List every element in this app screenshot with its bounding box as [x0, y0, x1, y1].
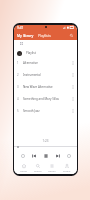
staticText: Playlist — [26, 51, 36, 55]
staticText: Search — [34, 169, 42, 172]
staticText: Library — [48, 169, 56, 172]
staticText: 3 — [17, 85, 19, 89]
staticText: New Wave Alternative — [23, 85, 53, 89]
staticText: Instrumental — [23, 73, 41, 77]
staticText: 2 — [17, 73, 19, 77]
button[interactable]: Playlist — [14, 49, 77, 57]
staticText: Profile — [63, 169, 71, 172]
button[interactable]: Shuffle — [18, 151, 27, 160]
button[interactable]: Search — [69, 33, 74, 38]
button[interactable]: Search — [33, 163, 43, 173]
button[interactable]: 1 — [14, 57, 77, 69]
staticText: Smooth Jazz — [23, 109, 40, 113]
button[interactable]: Profile — [62, 163, 72, 173]
staticText: 5 — [17, 109, 19, 113]
button[interactable]: Playlists — [38, 33, 51, 38]
staticText: 4 — [17, 97, 19, 101]
staticText: 9:41 — [17, 26, 24, 30]
staticText: Something and Mary Sillas — [23, 97, 59, 101]
button[interactable]: Repeat — [64, 151, 73, 160]
staticText: 1:23 — [14, 139, 77, 143]
button[interactable]: 3 — [14, 81, 77, 93]
button[interactable]: Previous — [29, 151, 38, 160]
staticText: Home — [20, 169, 27, 172]
button[interactable]: 2 — [14, 69, 77, 81]
staticText: 1 — [17, 61, 19, 65]
button[interactable]: My library — [17, 33, 34, 38]
staticText: My library — [17, 33, 34, 38]
staticText: Playlists — [38, 33, 51, 38]
staticText: Alternative — [23, 61, 38, 65]
button[interactable]: Library — [47, 163, 57, 173]
button[interactable]: Next — [53, 151, 62, 160]
button[interactable]: 5 — [14, 105, 77, 117]
button[interactable]: 4 — [14, 93, 77, 105]
button[interactable]: Pause — [41, 151, 50, 160]
button[interactable]: Home — [19, 163, 28, 173]
